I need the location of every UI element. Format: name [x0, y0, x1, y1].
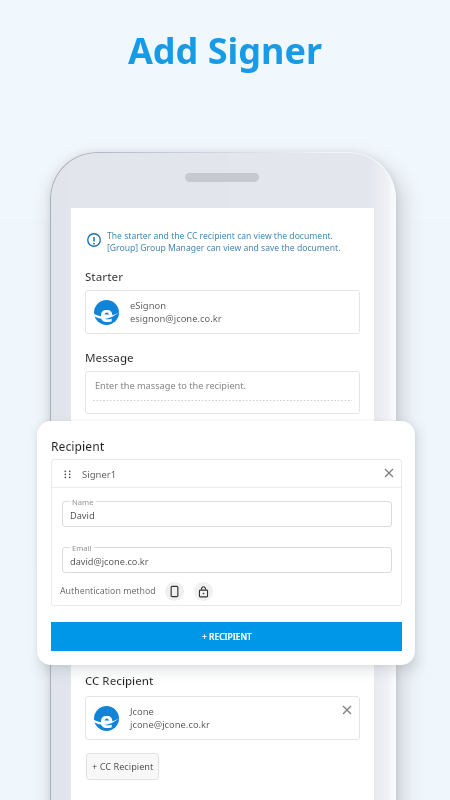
staticText: David [70, 509, 95, 522]
staticText: Authentication method [60, 585, 156, 597]
staticText: esignon@jcone.co.kr [130, 312, 222, 325]
staticText: Jcone [130, 705, 154, 718]
staticText: Message [85, 350, 134, 366]
button[interactable]: + RECIPIENT [51, 622, 402, 651]
staticText: e [100, 298, 114, 323]
staticText: Recipient [51, 438, 105, 454]
staticText: Email [72, 543, 92, 553]
button[interactable]: Remove CC recipient [336, 699, 358, 721]
staticText: Starter [85, 269, 124, 285]
staticText: + CC Recipient [92, 760, 154, 773]
staticText: Name [72, 497, 94, 507]
button[interactable]: david@jcone.co.kr [62, 547, 392, 573]
staticText: eSignon [130, 299, 166, 312]
staticText: e [100, 704, 114, 729]
button[interactable]: Mobile authentication [165, 582, 184, 601]
button[interactable]: e [85, 696, 360, 740]
staticText: Enter the massage to the recipient. [95, 379, 247, 392]
staticText: Signer1 [82, 468, 117, 481]
staticText: Add Signer [0, 26, 450, 75]
button[interactable]: Password authentication [194, 582, 213, 601]
button[interactable]: Remove signer [378, 462, 400, 484]
button[interactable]: + CC Recipient [86, 753, 159, 780]
button[interactable]: Enter the massage to the recipient. [85, 371, 360, 414]
button[interactable]: e [85, 290, 360, 334]
staticText: CC Recipient [85, 673, 154, 689]
button[interactable]: David [62, 501, 392, 527]
staticText: david@jcone.co.kr [70, 555, 149, 568]
staticText: [Group] Group Manager can view and save … [107, 242, 341, 254]
staticText: + RECIPIENT [202, 631, 252, 643]
staticText: jcone@jcone.co.kr [130, 718, 210, 731]
staticText: The starter and the CC recipient can vie… [107, 230, 333, 242]
